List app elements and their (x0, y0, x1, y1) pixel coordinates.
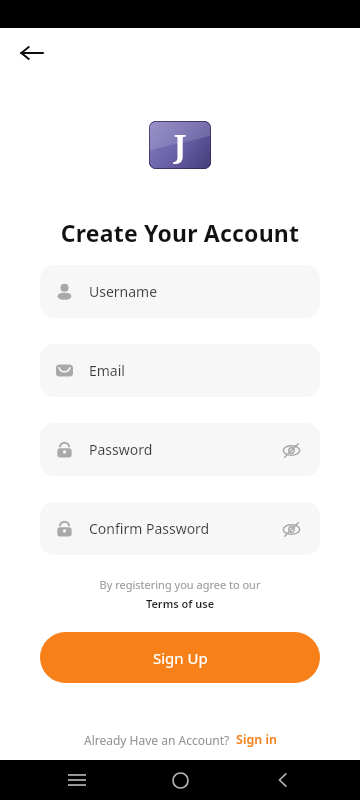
staticText: By registering you agree to our (0, 577, 360, 592)
staticText: Password (89, 440, 278, 459)
button[interactable]: Back (14, 35, 50, 71)
button[interactable]: Password (40, 423, 320, 476)
button[interactable]: Home (160, 760, 200, 800)
button[interactable]: Recent apps (57, 760, 97, 800)
button[interactable]: Toggle password visibility (278, 437, 304, 463)
button[interactable]: Sign Up (40, 632, 320, 683)
staticText: Create Your Account (0, 217, 360, 248)
button[interactable]: Terms of use (0, 596, 360, 611)
button[interactable]: Confirm Password (40, 502, 320, 555)
button[interactable]: Email (40, 344, 320, 397)
staticText: Username (89, 282, 304, 301)
button[interactable]: Sign in (236, 731, 277, 748)
button[interactable]: Username (40, 265, 320, 318)
staticText: Confirm Password (89, 519, 278, 538)
staticText: Sign Up (153, 648, 208, 668)
button[interactable]: Toggle password visibility (278, 516, 304, 542)
staticText: J (174, 125, 186, 166)
staticText: Sign in (236, 731, 277, 748)
staticText: Email (89, 361, 304, 380)
button[interactable]: Back (263, 760, 303, 800)
staticText: Already Have an Account? (84, 732, 230, 748)
